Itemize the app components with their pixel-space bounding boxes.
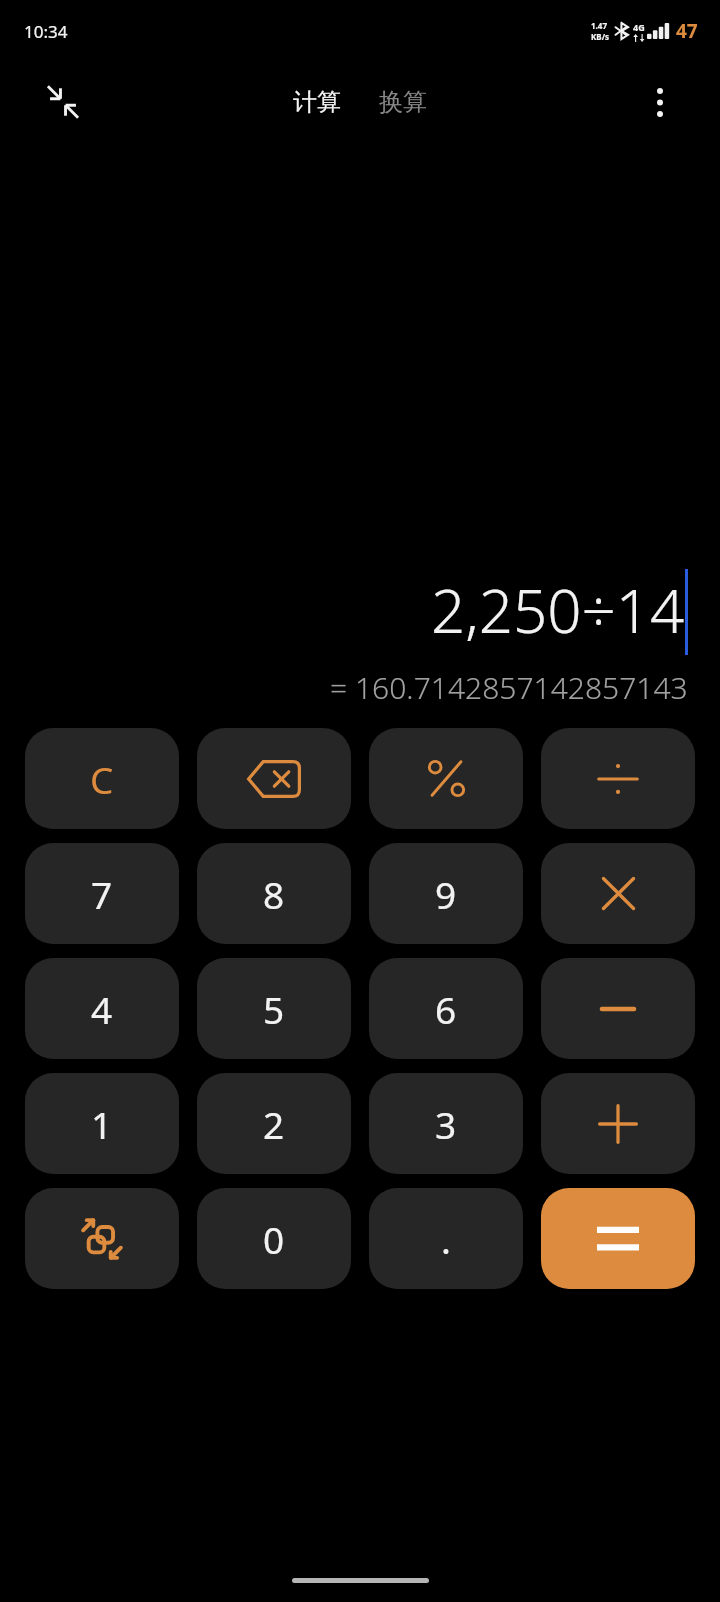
button[interactable]: Percent	[369, 728, 523, 829]
staticText: 0	[263, 1214, 285, 1264]
staticText: C	[90, 754, 114, 804]
staticText: 6	[435, 984, 457, 1034]
staticText: 1.47	[591, 20, 607, 31]
staticText: 4	[91, 984, 113, 1034]
staticText: 5	[263, 984, 285, 1034]
staticText: 换算	[379, 87, 427, 117]
button[interactable]: 1	[25, 1073, 179, 1174]
staticText: 计算	[293, 87, 341, 117]
staticText: 9	[435, 869, 457, 919]
button[interactable]: 9	[369, 843, 523, 944]
button[interactable]: Minus	[541, 958, 695, 1059]
staticText: 2,250÷14	[431, 569, 685, 651]
button[interactable]: Multiply	[541, 843, 695, 944]
staticText: 10:34	[24, 20, 68, 43]
button[interactable]: 7	[25, 843, 179, 944]
button[interactable]: Divide	[541, 728, 695, 829]
staticText: 1	[91, 1099, 113, 1149]
staticText: 2	[263, 1099, 285, 1149]
button[interactable]: 6	[369, 958, 523, 1059]
button[interactable]: Clear	[25, 728, 179, 829]
staticText: 7	[91, 869, 113, 919]
staticText: .	[441, 1214, 451, 1264]
button[interactable]: Collapse	[36, 75, 90, 129]
button[interactable]: More options	[634, 76, 686, 128]
staticText: 4G	[633, 21, 645, 33]
button[interactable]: Backspace	[197, 728, 351, 829]
button[interactable]: 4	[25, 958, 179, 1059]
staticText: 8	[263, 869, 285, 919]
button[interactable]: 5	[197, 958, 351, 1059]
staticText: = 160.7142857142857143	[330, 667, 688, 708]
button[interactable]: 8	[197, 843, 351, 944]
button[interactable]: 2	[197, 1073, 351, 1174]
button[interactable]: 换算	[371, 81, 435, 123]
button[interactable]: Equals	[541, 1188, 695, 1289]
staticText: KB/s	[591, 31, 609, 42]
button[interactable]: 0	[197, 1188, 351, 1289]
button[interactable]: Unit converter	[25, 1188, 179, 1289]
staticText: 3	[435, 1099, 457, 1149]
button[interactable]: 3	[369, 1073, 523, 1174]
button[interactable]: 计算	[285, 81, 349, 123]
staticText: 47	[676, 18, 698, 44]
button[interactable]: Plus	[541, 1073, 695, 1174]
button[interactable]: Decimal point	[369, 1188, 523, 1289]
